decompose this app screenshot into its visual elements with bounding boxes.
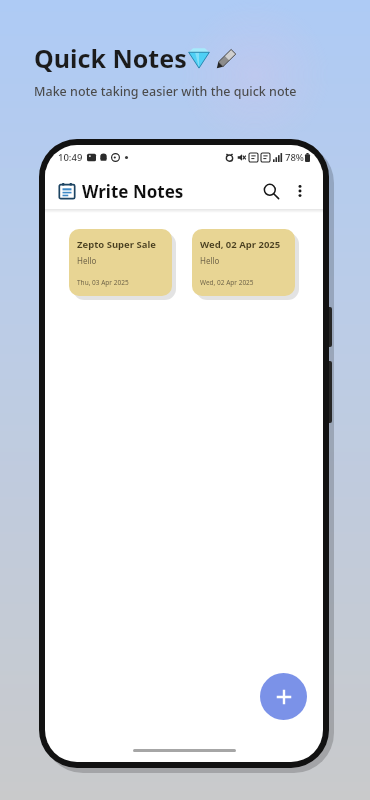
button[interactable]: More options — [287, 178, 313, 204]
staticText: Wed, 02 Apr 2025 — [200, 278, 254, 287]
staticText: Thu, 03 Apr 2025 — [77, 278, 129, 287]
button[interactable]: Zepto Super Sale — [69, 229, 172, 296]
button[interactable]: Search — [256, 176, 286, 206]
staticText: Write Notes — [82, 180, 184, 203]
staticText: Wed, 02 Apr 2025 — [200, 238, 281, 251]
staticText: 78% — [285, 151, 304, 164]
staticText: Make note taking easier with the quick n… — [34, 83, 297, 100]
staticText: 10:49 — [58, 151, 83, 164]
button[interactable]: Add note — [260, 673, 307, 720]
staticText: Hello — [200, 255, 220, 266]
button[interactable]: Wed, 02 Apr 2025 — [192, 229, 295, 296]
staticText: Zepto Super Sale — [77, 238, 156, 251]
staticText: Quick Notes — [34, 41, 187, 75]
staticText: Hello — [77, 255, 97, 266]
